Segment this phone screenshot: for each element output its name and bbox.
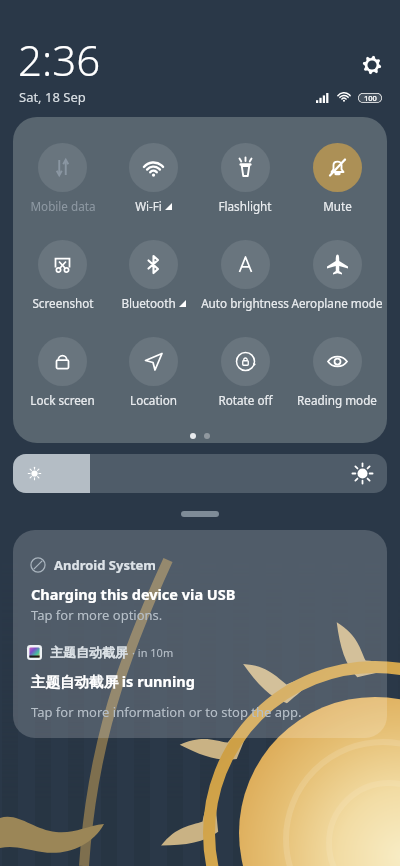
button[interactable]: Flashlight	[199, 143, 291, 214]
staticText: Aeroplane mode	[291, 295, 383, 311]
button[interactable]: Settings	[359, 52, 385, 78]
staticText: Tap for more information or to stop the …	[31, 703, 302, 721]
staticText: Screenshot	[32, 295, 94, 311]
staticText: Bluetooth	[121, 295, 176, 311]
staticText: Sat, 18 Sep	[19, 88, 86, 106]
staticText: Mute	[323, 198, 352, 214]
staticText: 主题自动截屏 is running	[31, 671, 195, 691]
button[interactable]: Aeroplane mode	[291, 240, 383, 311]
button[interactable]: Mobile data	[17, 143, 108, 214]
staticText: 100	[364, 93, 377, 103]
button[interactable]: Bluetooth	[108, 240, 199, 311]
staticText: Auto brightness	[201, 295, 289, 311]
staticText: Mobile data	[30, 198, 96, 214]
button[interactable]: Reading mode	[291, 337, 383, 408]
staticText: Flashlight	[218, 198, 272, 214]
button[interactable]: Android System	[13, 530, 387, 738]
button[interactable]: Screenshot	[17, 240, 108, 311]
staticText: Reading mode	[297, 392, 377, 408]
button[interactable]: Lock screen	[17, 337, 108, 408]
staticText: Tap for more options.	[31, 606, 163, 624]
button[interactable]: Wi-Fi	[108, 143, 199, 214]
staticText: · in 10m	[132, 645, 174, 660]
staticText: 2:36	[18, 31, 101, 88]
staticText: Android System	[54, 556, 157, 574]
button[interactable]: Auto brightness	[199, 240, 291, 311]
staticText: Lock screen	[30, 392, 95, 408]
button[interactable]: Rotate off	[199, 337, 291, 408]
button[interactable]: Brightness	[13, 454, 387, 493]
staticText: Wi-Fi	[135, 198, 162, 214]
staticText: Rotate off	[218, 392, 273, 408]
button[interactable]: Mute	[291, 143, 383, 214]
button[interactable]: Location	[108, 337, 199, 408]
staticText: 主题自动截屏	[50, 644, 128, 660]
staticText: Location	[130, 392, 177, 408]
staticText: Charging this device via USB	[31, 584, 236, 604]
